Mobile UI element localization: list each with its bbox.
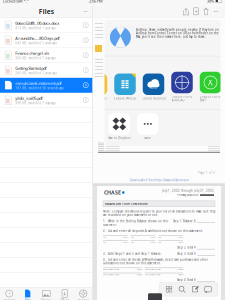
staticText: Step 4 Total [177, 278, 193, 282]
staticText: Step 5 Total [177, 284, 193, 288]
staticText: $ [194, 278, 196, 282]
staticText: Files [39, 7, 54, 16]
button[interactable]: Photos [37, 288, 55, 300]
staticText: $ [194, 252, 196, 255]
staticText: Check Number or Date [103, 269, 119, 270]
button[interactable]: Markup [188, 283, 201, 296]
staticText: Date [103, 241, 106, 243]
staticText: Date [158, 236, 161, 238]
staticText: 3. Add Steps 1 and 2 and Step 1 Balance. [103, 252, 162, 255]
staticText: Page 1 of 3 [198, 171, 215, 174]
button[interactable]: yildiz_icai05.pdf [0, 93, 92, 108]
staticText: Photos [41, 298, 51, 300]
staticText: $ [194, 219, 196, 223]
staticText: Locked SIM [3, 0, 23, 4]
button[interactable]: Getting Started.pdf [0, 63, 92, 78]
button[interactable]: Comment [201, 283, 214, 296]
staticText: Amount [178, 274, 183, 276]
button[interactable]: Save to Dropbox [107, 113, 131, 140]
staticText: X [208, 77, 213, 88]
staticText: Copy to PDF to Excel [200, 95, 221, 102]
button[interactable]: Around-the-...-80-Days.pdf [0, 33, 92, 48]
staticText: 34% [207, 0, 214, 4]
staticText: 1. Write in the Ending Balance shown on … [103, 219, 168, 227]
staticText: Step 2 Total [177, 246, 193, 249]
button[interactable]: More [136, 113, 160, 140]
staticText: Amount [150, 241, 155, 243]
staticText: More [144, 136, 151, 140]
staticText: Check Number or Date [144, 269, 160, 270]
staticText: Check Number or Date [103, 274, 119, 276]
staticText: Amount [150, 236, 155, 238]
staticText: Getting Started.pdf [15, 65, 46, 71]
staticText: Recents [4, 298, 15, 300]
staticText: 187 KB, modified 30 seconds ago [15, 86, 64, 90]
button[interactable]: Finance charge1.xls [0, 48, 92, 63]
button[interactable]: Export [191, 6, 201, 17]
staticText: Amount [178, 269, 183, 270]
button[interactable]: 0deec52df8...00.docx.docx [0, 18, 92, 33]
staticText: CHASE [104, 189, 121, 196]
staticText: 240 KB, modified 2 years ago [15, 71, 57, 75]
button[interactable]: sample-bank-statement.pdf [0, 78, 92, 93]
staticText: 4. List and enter all checks, ATM withdr… [103, 258, 208, 265]
staticText: $ [194, 284, 196, 288]
button[interactable]: Recents [0, 288, 18, 300]
staticText: sample-bank-statement.pdf [15, 80, 61, 86]
staticText: 643 KB, modified 2 years ago [15, 41, 57, 45]
staticText: OneDrive [150, 88, 157, 89]
staticText: Copy to Notes [86, 97, 106, 100]
staticText: Primary Account: [177, 193, 199, 197]
staticText: 413 KB, modified 1 year ago [15, 26, 56, 30]
button[interactable]: More [211, 6, 221, 16]
button[interactable]: Thumbnails [162, 283, 175, 296]
staticText: 360 KB, modified 7 days ago [15, 56, 56, 60]
staticText: Offline [60, 298, 70, 300]
staticText: BALANCING YOUR CHECKBOOK [105, 202, 148, 205]
staticText: Amount [123, 236, 128, 238]
staticText: Note: Compare checkbook register to your… [103, 210, 215, 217]
staticText: 2:06 PM [89, 0, 103, 4]
staticText: yildiz_icai05.pdf [15, 95, 42, 101]
staticText: Files [25, 298, 31, 300]
staticText: Step 3 Total [177, 252, 193, 255]
staticText: Step 1 Balance [173, 219, 193, 223]
button[interactable]: Delete [201, 6, 211, 17]
button[interactable]: Offline [55, 288, 74, 300]
staticText: Date [103, 236, 106, 238]
button[interactable]: Files [18, 288, 37, 300]
staticText: Check Number or Date [144, 274, 160, 276]
staticText: Save to Dropbox [108, 136, 130, 140]
staticText: 0deec52df8...00.docx.docx [15, 20, 59, 26]
button[interactable]: More [80, 6, 90, 16]
staticText: 2. List and enter all deposits & additio… [103, 229, 203, 233]
button[interactable]: Copy to PDF to AutoCAD [170, 72, 194, 102]
staticText: AirDrop. Share instantly with people nea… [136, 28, 219, 38]
staticText: $ [194, 246, 196, 249]
button[interactable]: Share [181, 6, 191, 17]
staticText: Amount [178, 236, 183, 238]
staticText: Date [158, 241, 161, 243]
staticText: Copy to PDF to AutoCAD [171, 95, 192, 102]
staticText: Amount [178, 241, 183, 243]
staticText: Amount [136, 274, 141, 276]
button[interactable]: OneDrive [141, 73, 165, 100]
staticText: 388 KB, modified 7 days ago [15, 101, 56, 105]
staticText: Date [131, 236, 134, 238]
staticText: Date [131, 241, 134, 243]
staticText: Finance charge1.xls [15, 50, 49, 56]
staticText: Copy to WinZip [114, 97, 136, 100]
staticText: Downloaded from http://www.tidyform.com [129, 178, 188, 182]
button[interactable]: Settings [74, 288, 92, 300]
button[interactable]: Copy to WinZip [113, 73, 137, 100]
button[interactable]: X [198, 72, 222, 102]
staticText: Settings [78, 298, 89, 300]
staticText: Copy to Business [141, 97, 165, 100]
button[interactable]: Search [175, 283, 188, 296]
staticText: July 1, 2002 through July 31, 2002 [162, 189, 214, 192]
button[interactable]: Copy to Notes [84, 73, 108, 100]
staticText: Amount [123, 241, 128, 243]
staticText: Amount [136, 269, 141, 270]
staticText: Around-the-...-80-Days.pdf [15, 35, 59, 41]
